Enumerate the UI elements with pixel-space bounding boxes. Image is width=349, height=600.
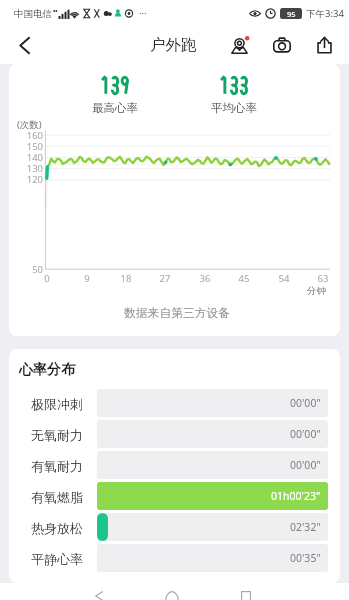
button[interactable]: 热身放松 [9, 513, 340, 544]
button[interactable]: Back [8, 26, 41, 64]
button[interactable]: Back [82, 583, 116, 600]
staticText: 最高心率 [92, 101, 138, 115]
button[interactable]: 极限冲刺 [9, 389, 340, 420]
staticText: 无氧耐力 [31, 427, 83, 443]
staticText: 户外跑 [150, 35, 197, 55]
button[interactable]: Home [155, 583, 189, 600]
staticText: 00'00" [290, 396, 321, 410]
staticText: ··· [139, 7, 147, 20]
staticText: 有氧燃脂 [31, 489, 83, 505]
staticText: 心率分布 [19, 361, 75, 379]
button[interactable]: 无氧耐力 [9, 420, 340, 451]
staticText: 36 [190, 272, 220, 285]
staticText: 平均心率 [211, 101, 257, 115]
staticText: 27 [150, 272, 180, 285]
button[interactable]: 有氧耐力 [9, 451, 340, 482]
staticText: 中国电信 [14, 8, 52, 20]
staticText: 0 [32, 272, 62, 285]
staticText: 63 [308, 272, 338, 285]
staticText: 9 [72, 272, 102, 285]
staticText: 数据来自第三方设备 [124, 306, 231, 321]
staticText: (次数) [17, 118, 42, 131]
staticText: 分钟 [307, 285, 326, 297]
button[interactable]: Camera [265, 26, 299, 64]
staticText: 热身放松 [31, 520, 83, 536]
staticText: 01h00'23" [271, 489, 321, 503]
staticText: 45 [229, 272, 259, 285]
staticText: 160 [13, 129, 43, 142]
staticText: 18 [111, 272, 141, 285]
staticText: 极限冲刺 [31, 396, 83, 412]
staticText: 有氧耐力 [31, 458, 83, 474]
button[interactable]: Friends [222, 26, 256, 64]
button[interactable]: Recents [229, 583, 263, 600]
staticText: 95 [287, 9, 296, 19]
staticText: 140 [13, 151, 43, 164]
button[interactable]: Share [307, 26, 341, 64]
staticText: 120 [13, 173, 43, 186]
staticText: 00'00" [290, 427, 321, 441]
button[interactable]: 有氧燃脂 [9, 482, 340, 513]
staticText: 130 [13, 162, 43, 175]
button[interactable]: 平静心率 [9, 544, 340, 575]
staticText: 00'35" [290, 551, 321, 565]
staticText: 150 [13, 140, 43, 153]
staticText: 下午3:34 [306, 7, 344, 20]
staticText: 02'32" [290, 520, 321, 534]
staticText: 54 [269, 272, 299, 285]
staticText: 平静心率 [31, 551, 83, 567]
staticText: 50 [13, 263, 43, 276]
staticText: 00'00" [290, 458, 321, 472]
